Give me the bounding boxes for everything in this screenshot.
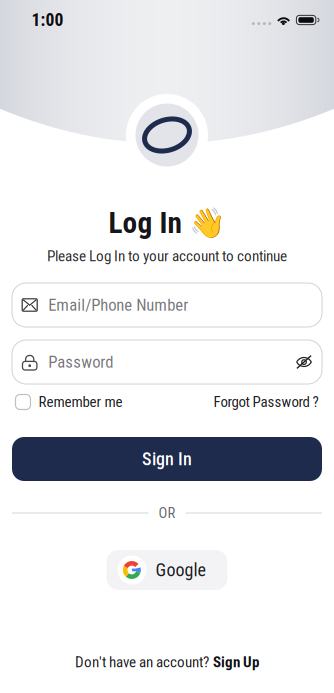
staticText: OR: [158, 504, 175, 522]
button[interactable]: Sign In: [12, 437, 322, 481]
staticText: Remember me: [38, 393, 122, 411]
staticText: Sign Up: [213, 653, 259, 671]
staticText: Password: [48, 352, 113, 372]
staticText: Google: [155, 559, 205, 581]
staticText: Email/Phone Number: [48, 295, 188, 315]
button[interactable]: Remember me: [15, 391, 122, 413]
button[interactable]: Google: [106, 550, 227, 590]
staticText: Forgot Password ?: [213, 393, 318, 411]
staticText: Log In 👋: [108, 206, 225, 240]
button[interactable]: Sign Up: [213, 653, 259, 671]
staticText: Don't have an account?: [75, 653, 209, 671]
staticText: Please Log In to your account to continu…: [47, 247, 287, 265]
staticText: Sign In: [142, 448, 192, 470]
staticText: 1:00: [31, 10, 63, 30]
button[interactable]: Forgot Password ?: [213, 391, 318, 413]
